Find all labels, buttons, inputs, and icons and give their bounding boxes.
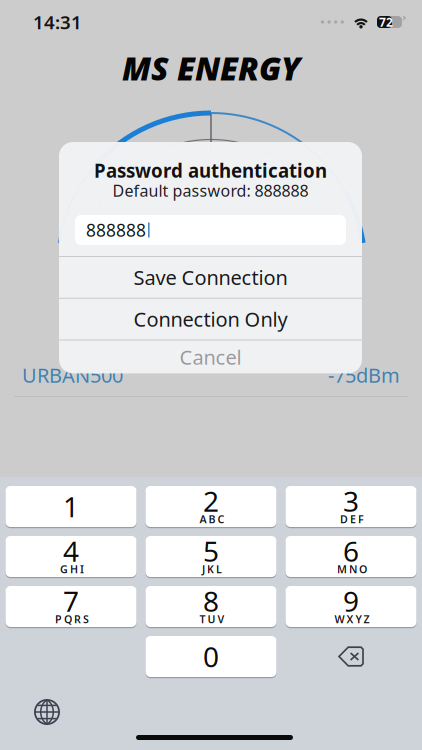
button[interactable]: 9 <box>285 586 416 627</box>
staticText: Password authentication <box>94 158 327 183</box>
staticText: TUV <box>199 612 224 626</box>
staticText: URBAN500 <box>22 362 123 388</box>
staticText: Cancel <box>179 344 241 370</box>
button[interactable]: 8 <box>145 586 276 627</box>
button[interactable]: 7 <box>5 586 136 627</box>
staticText: 72 <box>379 14 393 30</box>
staticText: Connection Only <box>133 306 287 332</box>
staticText: Default password: 888888 <box>112 180 308 201</box>
staticText: 1 <box>63 488 79 525</box>
button[interactable]: Delete <box>285 636 416 677</box>
button[interactable]: 2 <box>145 486 276 527</box>
button[interactable]: Cancel <box>59 340 362 373</box>
button[interactable]: Connection Only <box>59 299 362 340</box>
staticText: MS ENERGY <box>122 47 300 89</box>
staticText: PQRS <box>55 612 89 626</box>
staticText: 7 <box>63 582 79 620</box>
staticText: 6 <box>343 532 359 570</box>
staticText: 14:31 <box>33 10 82 34</box>
staticText: 3 <box>343 482 359 520</box>
staticText: 8 <box>203 582 219 620</box>
staticText: -75dBm <box>328 362 400 388</box>
button[interactable]: 0 <box>145 636 276 677</box>
staticText: 4 <box>63 532 79 570</box>
staticText: 888888 <box>86 218 146 241</box>
staticText: 5 <box>203 532 219 570</box>
button[interactable]: 4 <box>5 536 136 577</box>
button[interactable]: Save Connection <box>59 257 362 298</box>
staticText: DEF <box>340 512 364 526</box>
button[interactable]: 1 <box>5 486 136 527</box>
button[interactable]: Next keyboard <box>27 692 67 732</box>
staticText: GHI <box>60 562 84 576</box>
staticText: 9 <box>343 582 359 620</box>
staticText: MNO <box>337 562 367 576</box>
button[interactable]: 6 <box>285 536 416 577</box>
staticText: ABC <box>199 512 224 526</box>
staticText: 2 <box>203 482 219 520</box>
button[interactable]: 3 <box>285 486 416 527</box>
staticText: Save Connection <box>133 264 287 291</box>
staticText: JKL <box>202 562 222 576</box>
staticText: WXYZ <box>334 612 369 626</box>
staticText: 0 <box>203 638 219 675</box>
button[interactable]: 5 <box>145 536 276 577</box>
